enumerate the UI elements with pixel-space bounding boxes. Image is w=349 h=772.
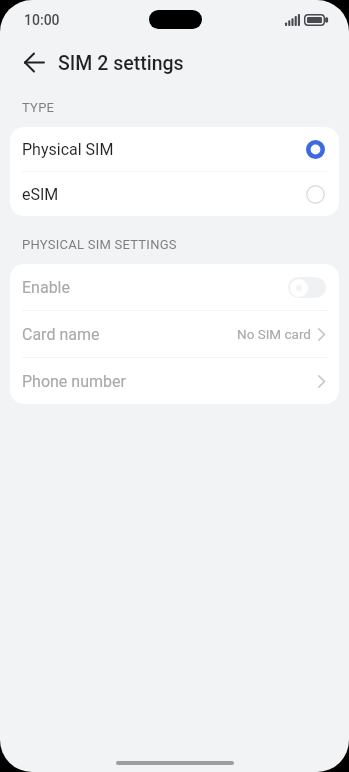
button[interactable]: Back (18, 46, 50, 78)
staticText: Phone number (22, 372, 318, 391)
button[interactable]: Enable (10, 264, 339, 310)
staticText: Enable (22, 278, 288, 297)
staticText: eSIM (22, 185, 306, 204)
staticText: 10:00 (24, 12, 60, 28)
button[interactable]: Enable (288, 277, 326, 298)
staticText: No SIM card (237, 326, 311, 342)
staticText: Card name (22, 325, 237, 344)
button[interactable]: Card name (10, 311, 339, 357)
button[interactable]: Physical SIM (10, 127, 339, 171)
staticText: Physical SIM (22, 140, 306, 159)
button[interactable]: Phone number (10, 358, 339, 404)
staticText: TYPE (22, 100, 55, 115)
staticText: SIM 2 settings (58, 52, 184, 75)
button[interactable]: eSIM (10, 172, 339, 216)
staticText: PHYSICAL SIM SETTINGS (22, 237, 177, 252)
